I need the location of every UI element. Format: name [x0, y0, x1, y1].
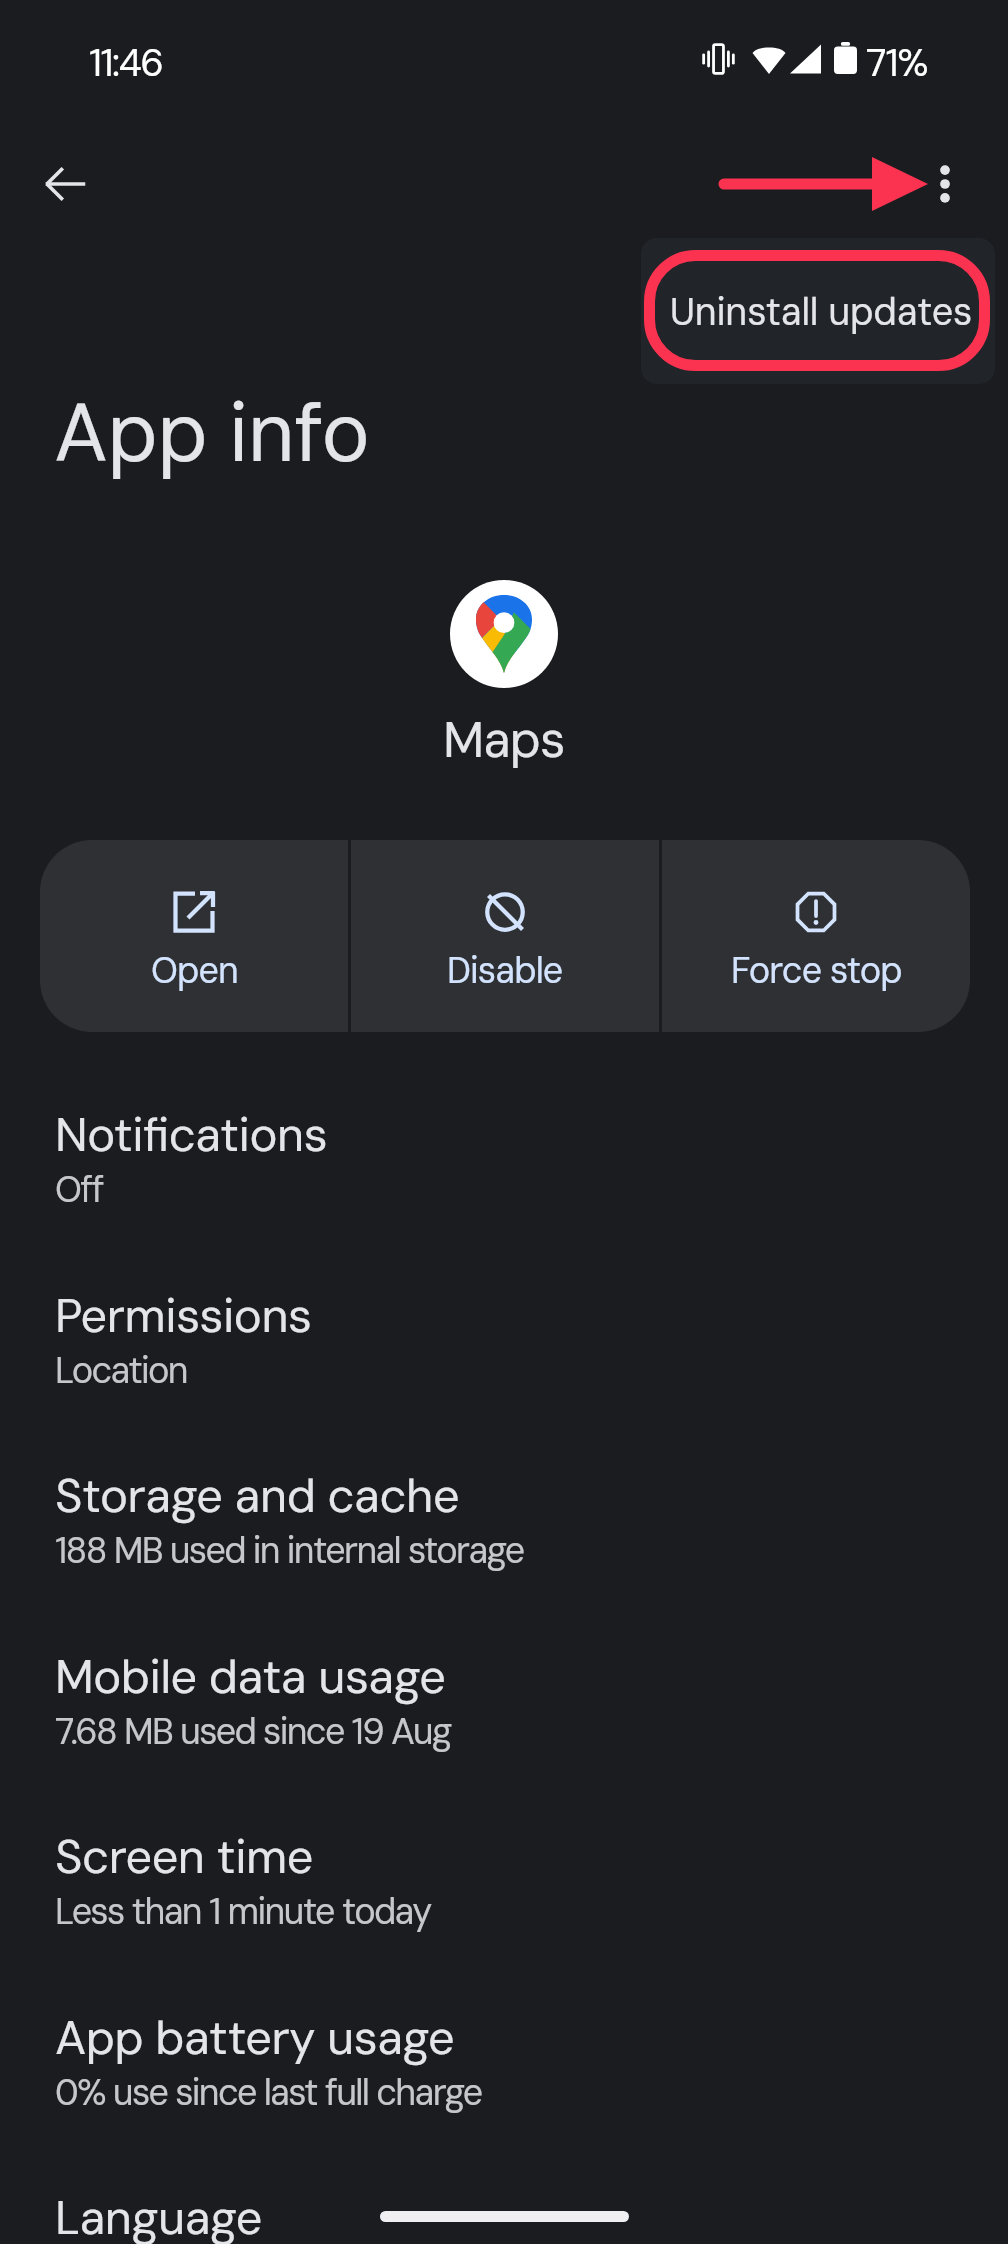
staticText: Screen time — [55, 1826, 313, 1887]
button[interactable]: Open — [40, 840, 348, 1032]
button[interactable]: Back — [18, 137, 112, 231]
staticText: Force stop — [731, 947, 902, 994]
staticText: Open — [151, 947, 238, 994]
staticText: App info — [54, 381, 370, 486]
button[interactable]: More options — [898, 137, 992, 231]
button[interactable]: Disable — [351, 840, 659, 1032]
staticText: Maps — [443, 707, 565, 772]
staticText: 7.68 MB used since 19 Aug — [55, 1708, 451, 1755]
staticText: App battery usage — [55, 2007, 455, 2068]
button[interactable]: App battery usage — [0, 1969, 1008, 2149]
button[interactable]: Mobile data usage — [0, 1608, 1008, 1788]
staticText: 188 MB used in internal storage — [55, 1527, 524, 1574]
staticText: Off — [55, 1166, 103, 1213]
button[interactable]: Notifications — [0, 1066, 1008, 1246]
staticText: Disable — [447, 947, 563, 994]
staticText: 0% use since last full charge — [55, 2069, 482, 2116]
staticText: Location — [55, 1347, 187, 1394]
staticText: 71% — [866, 38, 928, 87]
staticText: Less than 1 minute today — [55, 1888, 431, 1935]
button[interactable]: Screen time — [0, 1788, 1008, 1968]
staticText: Permissions — [55, 1285, 312, 1346]
staticText: Language — [55, 2187, 262, 2244]
staticText: Storage and cache — [55, 1465, 460, 1526]
button[interactable]: Permissions — [0, 1247, 1008, 1427]
staticText: Mobile data usage — [55, 1646, 446, 1707]
staticText: Notifications — [55, 1104, 328, 1165]
button[interactable]: Force stop — [662, 840, 970, 1032]
button[interactable]: Uninstall updates — [641, 238, 995, 384]
button[interactable]: Language — [0, 2149, 1008, 2244]
button[interactable]: Storage and cache — [0, 1427, 1008, 1607]
staticText: Uninstall updates — [670, 287, 973, 336]
staticText: 11:46 — [89, 38, 163, 87]
